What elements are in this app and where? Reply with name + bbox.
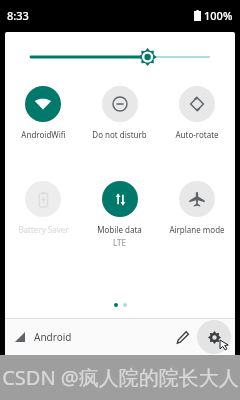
staticText: 100% bbox=[204, 8, 233, 23]
staticText: Mobile data bbox=[97, 224, 142, 235]
staticText: Auto-rotate bbox=[175, 129, 219, 140]
button[interactable]: Brightness bbox=[5, 32, 235, 82]
other: Signal bbox=[15, 332, 25, 342]
button[interactable]: Airplane mode bbox=[158, 177, 235, 235]
button[interactable]: Mobile data bbox=[81, 177, 158, 248]
button[interactable]: AndroidWifi bbox=[5, 82, 81, 140]
button[interactable]: Do not disturb bbox=[81, 82, 158, 140]
staticText: Do not disturb bbox=[92, 129, 147, 140]
staticText: LTE bbox=[113, 237, 126, 248]
staticText: Airplane mode bbox=[169, 224, 225, 235]
staticText: CSDN @疯人院的院长大人 bbox=[2, 364, 239, 391]
staticText: 8:33 bbox=[7, 8, 29, 23]
staticText: AndroidWifi bbox=[21, 129, 66, 140]
staticText: Battery Saver bbox=[18, 224, 69, 235]
button[interactable]: Settings bbox=[197, 320, 231, 354]
button[interactable]: Edit bbox=[167, 322, 197, 352]
button[interactable]: Battery Saver bbox=[5, 177, 81, 235]
button[interactable]: Auto-rotate bbox=[158, 82, 235, 140]
staticText: Android bbox=[34, 330, 72, 344]
